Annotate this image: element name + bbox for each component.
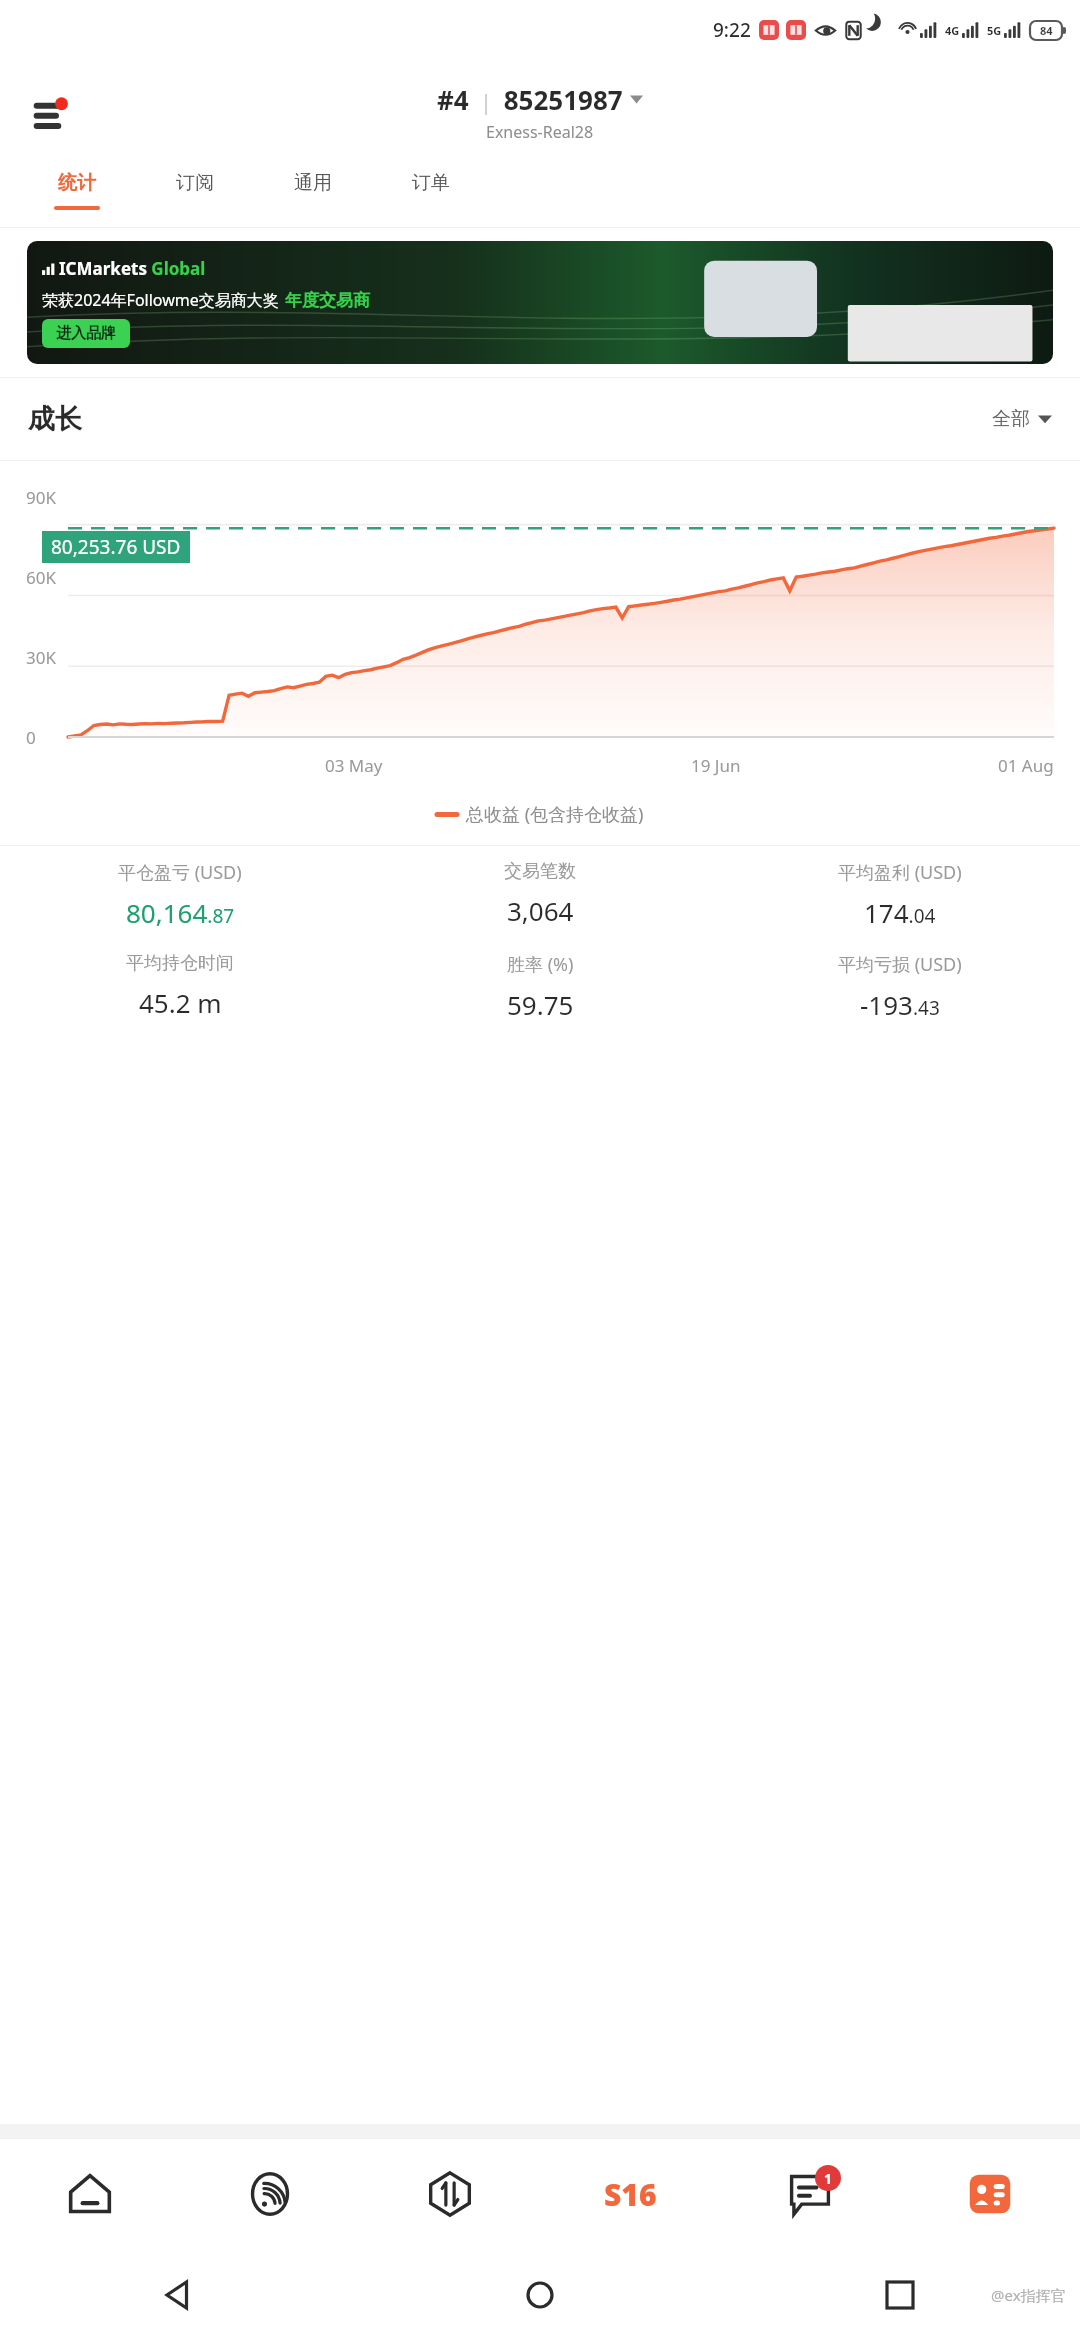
staticText: 4G — [945, 23, 960, 38]
staticText: S16 — [604, 2174, 657, 2215]
staticText: 年度交易商 — [285, 290, 370, 311]
staticText: 胜率 (%) — [507, 952, 574, 977]
button[interactable]: Signals — [180, 2138, 360, 2250]
staticText: 进入品牌 — [56, 324, 116, 343]
staticText: 80,164.87 — [126, 895, 235, 930]
button[interactable]: 通用 — [254, 165, 372, 227]
staticText: 平均盈利 (USD) — [838, 860, 962, 885]
staticText: 通用 — [294, 171, 332, 195]
staticText: 19 Jun — [691, 754, 741, 777]
staticText: 交易笔数 — [504, 860, 576, 883]
staticText: 平均持仓时间 — [126, 952, 234, 975]
button[interactable]: Home — [518, 2273, 562, 2317]
button[interactable]: 全部 — [992, 407, 1052, 431]
staticText: 03 May — [325, 754, 383, 777]
staticText: 80,253.76 USD — [51, 534, 181, 560]
button[interactable]: 进入品牌 — [42, 319, 130, 348]
staticText: 174.04 — [864, 895, 936, 930]
button[interactable]: 平均亏损 (USD) — [720, 952, 1080, 1022]
button[interactable]: Trade — [360, 2138, 540, 2250]
staticText: 订阅 — [176, 171, 214, 195]
staticText: 30K — [26, 646, 56, 669]
staticText: 1 — [824, 2169, 833, 2188]
button[interactable]: Profile — [900, 2138, 1080, 2250]
staticText: 总收益 (包含持仓收益) — [466, 802, 644, 827]
button[interactable]: Menu — [30, 87, 82, 139]
staticText: 60K — [26, 566, 56, 589]
staticText: 成长 — [28, 402, 82, 436]
staticText: 84 — [1040, 23, 1053, 38]
button[interactable]: Home — [0, 2138, 180, 2250]
button[interactable]: 平均盈利 (USD) — [720, 860, 1080, 930]
button[interactable]: 交易笔数 — [360, 860, 720, 928]
button[interactable]: 订单 — [372, 165, 490, 227]
staticText: 9:22 — [713, 17, 751, 43]
staticText: 荣获2024年Followme交易商大奖 — [42, 289, 279, 311]
staticText: 0 — [26, 726, 36, 749]
staticText: 全部 — [992, 407, 1030, 431]
button[interactable]: Messages — [720, 2138, 900, 2250]
staticText: 订单 — [412, 171, 450, 195]
staticText: #4 | 85251987 — [437, 82, 623, 117]
staticText: 平仓盈亏 (USD) — [118, 860, 242, 885]
staticText: 统计 — [58, 171, 96, 195]
button[interactable]: 胜率 (%) — [360, 952, 720, 1022]
button[interactable]: S16 — [540, 2138, 720, 2250]
button[interactable]: 订阅 — [136, 165, 254, 227]
button[interactable]: Back — [158, 2273, 202, 2317]
staticText: 平均亏损 (USD) — [838, 952, 962, 977]
staticText: ICMarkets Global — [59, 257, 206, 280]
staticText: @ex指挥官 — [991, 2285, 1066, 2305]
staticText: Exness-Real28 — [486, 121, 594, 143]
staticText: 59.75 — [507, 987, 574, 1022]
button[interactable]: #4 | 85251987 — [437, 82, 643, 143]
button[interactable]: 平仓盈亏 (USD) — [0, 860, 360, 930]
button[interactable]: Recents — [878, 2273, 922, 2317]
staticText: -193.43 — [860, 987, 940, 1022]
staticText: 45.2 m — [139, 985, 222, 1020]
staticText: 5G — [987, 23, 1002, 38]
button[interactable]: 平均持仓时间 — [0, 952, 360, 1020]
button[interactable]: ICMarkets Global — [27, 241, 1053, 364]
staticText: 90K — [26, 486, 56, 509]
staticText: 01 Aug — [998, 754, 1054, 777]
button[interactable]: 统计 — [18, 165, 136, 227]
staticText: 3,064 — [507, 893, 574, 928]
